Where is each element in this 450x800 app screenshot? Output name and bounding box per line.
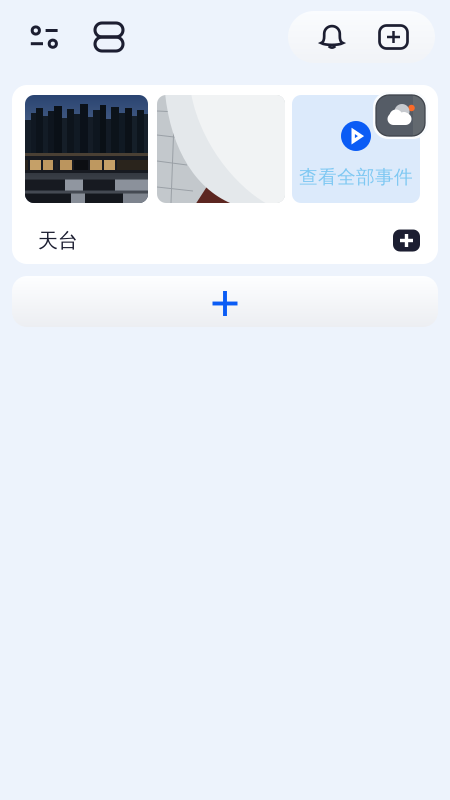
button[interactable]: Add	[364, 11, 423, 63]
button[interactable]: 查看全部事件	[292, 95, 420, 203]
button[interactable]: Filters	[19, 12, 69, 62]
button[interactable]: Notifications	[288, 11, 376, 63]
button[interactable]: Layout	[84, 12, 134, 62]
staticText: 天台	[38, 228, 78, 253]
staticText: 查看全部事件	[299, 165, 413, 188]
button[interactable]: Add device	[393, 229, 420, 251]
button[interactable]: Add room	[0, 276, 450, 327]
